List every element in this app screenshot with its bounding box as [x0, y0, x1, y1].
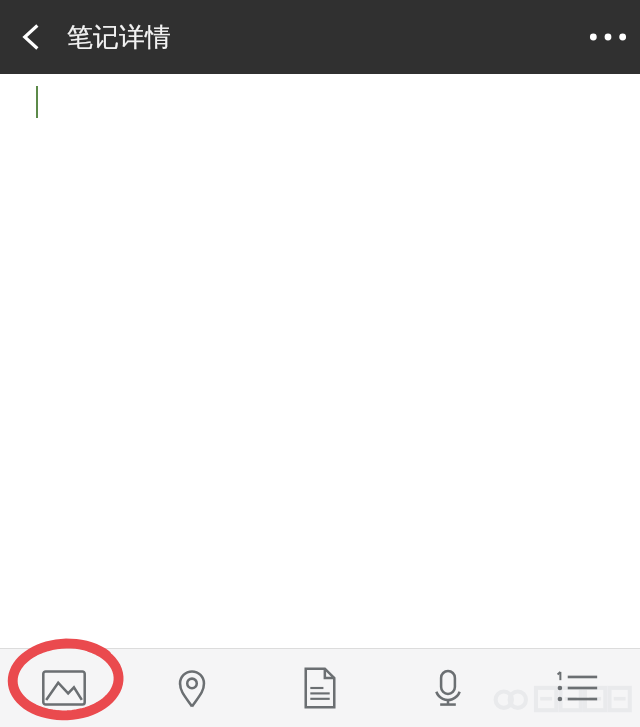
- button[interactable]: [0, 74, 640, 648]
- button[interactable]: Insert document: [256, 649, 384, 727]
- button[interactable]: Insert image: [0, 649, 128, 727]
- button[interactable]: Ordered list: [512, 649, 640, 727]
- button[interactable]: Voice input: [384, 649, 512, 727]
- button[interactable]: Back: [0, 6, 62, 68]
- button[interactable]: More options: [576, 5, 640, 69]
- staticText: 笔记详情: [67, 21, 171, 54]
- button[interactable]: Insert location: [128, 649, 256, 727]
